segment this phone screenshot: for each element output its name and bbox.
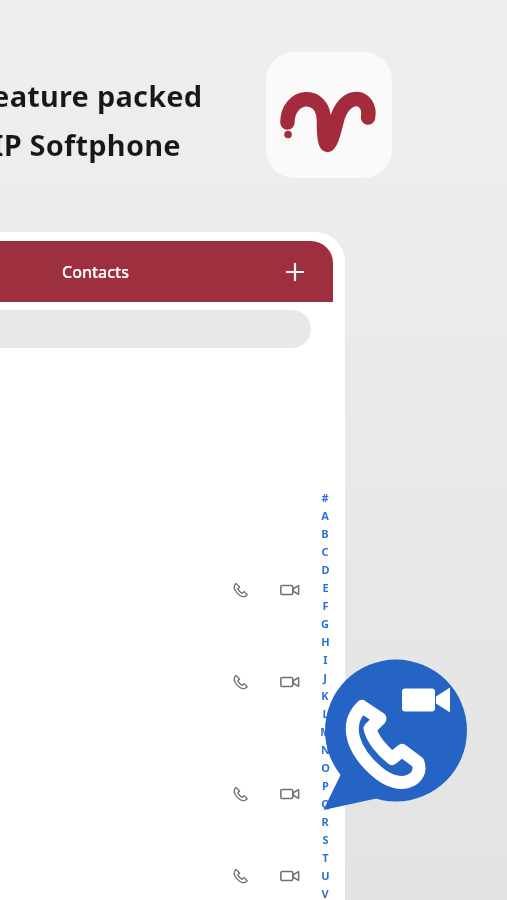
button[interactable]: Video call xyxy=(273,777,307,811)
staticText: P xyxy=(322,778,329,796)
staticText: Contacts xyxy=(62,261,130,283)
button[interactable]: Audio call xyxy=(223,777,257,811)
staticText: O xyxy=(321,760,330,778)
staticText: A xyxy=(321,508,329,526)
button[interactable]: Audio call xyxy=(0,848,333,900)
button[interactable]: Add contact xyxy=(275,252,315,292)
staticText: T xyxy=(322,850,329,868)
staticText: G xyxy=(321,616,329,634)
staticText: S xyxy=(322,832,329,850)
staticText: E xyxy=(322,580,329,598)
button[interactable]: Audio call xyxy=(223,573,257,607)
staticText: R xyxy=(321,814,329,832)
staticText: F xyxy=(322,598,329,616)
staticText: SIP Softphone xyxy=(0,125,181,164)
button[interactable]: Audio call xyxy=(223,859,257,893)
staticText: B xyxy=(321,526,329,544)
staticText: H xyxy=(321,634,330,652)
staticText: J xyxy=(323,670,327,688)
staticText: N xyxy=(321,742,330,760)
button[interactable]: Audio call xyxy=(0,766,333,822)
staticText: M xyxy=(320,724,331,742)
button[interactable]: New call xyxy=(318,658,474,814)
staticText: I xyxy=(323,652,328,670)
button[interactable]: Video call xyxy=(273,859,307,893)
staticText: Feature packed xyxy=(0,76,203,115)
button[interactable]: Audio call xyxy=(223,665,257,699)
staticText: C xyxy=(321,544,329,562)
button[interactable]: s xyxy=(0,654,333,710)
staticText: D xyxy=(321,562,330,580)
staticText: U xyxy=(321,868,330,886)
button[interactable]: Alphabet index xyxy=(316,490,334,900)
button[interactable]: Audio call xyxy=(0,562,333,618)
button[interactable]: Video call xyxy=(273,665,307,699)
staticText: # xyxy=(321,490,329,508)
staticText: V xyxy=(321,886,329,900)
staticText: Q xyxy=(321,796,330,814)
staticText: L xyxy=(322,706,329,724)
button[interactable]: App logo xyxy=(266,52,392,178)
button[interactable]: Video call xyxy=(273,573,307,607)
staticText: K xyxy=(321,688,329,706)
